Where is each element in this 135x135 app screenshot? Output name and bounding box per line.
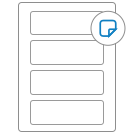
button[interactable]: Note [30,100,103,124]
button[interactable]: Note [30,11,103,34]
button[interactable]: Note [30,70,103,94]
button[interactable]: Note [30,40,103,64]
button[interactable]: New note [91,11,125,45]
